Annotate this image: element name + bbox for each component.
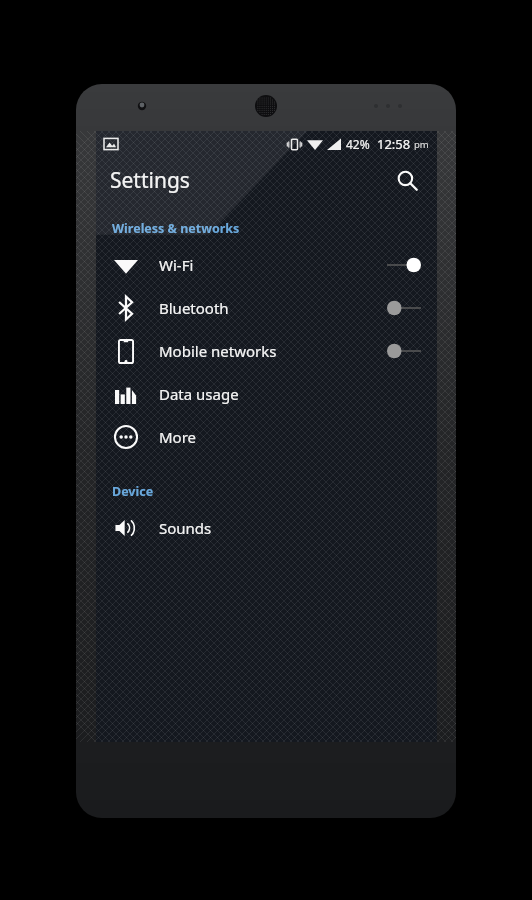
button[interactable]: Data usage	[96, 372, 437, 415]
staticText: pm	[414, 138, 429, 151]
button[interactable]: Sounds	[96, 506, 437, 549]
staticText: 42%	[346, 136, 370, 152]
button[interactable]: Bluetooth toggle	[387, 297, 421, 319]
staticText: Device	[112, 483, 154, 500]
staticText: Wi-Fi	[159, 255, 194, 275]
button[interactable]: Wi-Fi toggle	[387, 254, 421, 276]
button[interactable]: Mobile networks	[96, 329, 437, 372]
button[interactable]: Wi-Fi	[96, 243, 437, 286]
button[interactable]: Mobile networks toggle	[387, 340, 421, 362]
staticText: Mobile networks	[159, 341, 277, 361]
staticText: 12:58	[377, 135, 411, 153]
staticText: Wireless & networks	[112, 220, 240, 237]
button[interactable]: Search	[387, 160, 427, 200]
staticText: More	[159, 427, 197, 447]
staticText: Settings	[110, 166, 190, 195]
button[interactable]: More	[96, 415, 437, 458]
button[interactable]: Bluetooth	[96, 286, 437, 329]
staticText: Bluetooth	[159, 298, 229, 318]
staticText: Data usage	[159, 384, 239, 404]
staticText: Sounds	[159, 518, 212, 538]
